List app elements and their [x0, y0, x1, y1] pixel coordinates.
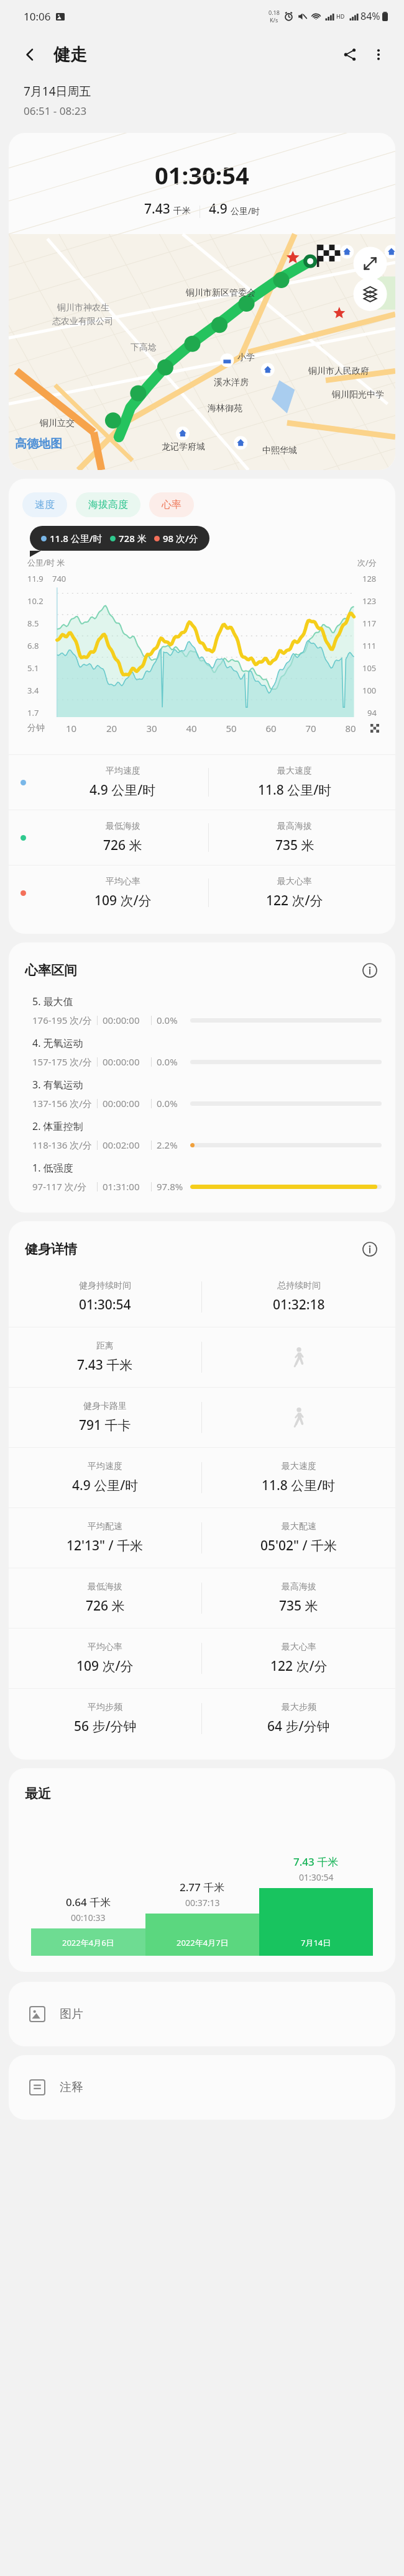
- staticText: 11.8 公里/时: [50, 532, 103, 545]
- staticText: 健身卡路里: [83, 1401, 127, 1412]
- staticText: 60: [251, 722, 291, 734]
- staticText: 平均心率: [88, 1642, 122, 1653]
- staticText: 海林御苑: [208, 403, 242, 414]
- staticText: 铜川立交: [40, 418, 75, 429]
- staticText: 健身持续时间: [79, 1280, 131, 1291]
- staticText: 平均步频: [88, 1702, 122, 1713]
- staticText: 平均心率: [106, 876, 140, 887]
- button[interactable]: Info about 心率区间: [359, 960, 380, 981]
- staticText: 6.8: [27, 640, 39, 651]
- staticText: 0.18: [269, 9, 280, 16]
- staticText: 铜川市神农生: [57, 302, 109, 314]
- staticText: 80: [331, 722, 370, 734]
- staticText: 高德地图: [15, 436, 62, 451]
- button[interactable]: 海拔高度: [76, 492, 140, 517]
- staticText: 2. 体重控制: [32, 1119, 83, 1133]
- staticText: 3. 有氧运动: [32, 1078, 83, 1091]
- staticText: 64 步/分钟: [267, 1717, 330, 1735]
- staticText: 00:10:33: [71, 1912, 106, 1923]
- staticText: 117: [362, 618, 377, 629]
- staticText: 0.64 千米: [66, 1895, 111, 1909]
- button[interactable]: 图片: [9, 1982, 395, 2046]
- staticText: 726 米: [86, 1597, 125, 1615]
- staticText: 最大心率: [282, 1642, 316, 1653]
- staticText: 01:30:54: [299, 1871, 334, 1883]
- staticText: 最高海拔: [277, 821, 312, 832]
- staticText: 111: [362, 640, 377, 651]
- button[interactable]: 7.43 千米: [259, 1813, 373, 1956]
- staticText: 00:00:00: [103, 1097, 151, 1109]
- staticText: 10:06: [24, 9, 51, 24]
- staticText: 铜川市人民政府: [308, 366, 369, 377]
- staticText: 70: [291, 722, 331, 734]
- staticText: 01:30:54: [155, 159, 249, 191]
- staticText: 5. 最大值: [32, 995, 73, 1008]
- staticText: 1.7: [27, 707, 39, 717]
- staticText: 122 次/分: [270, 1657, 328, 1675]
- staticText: 3.4: [27, 685, 39, 696]
- staticText: 2022年4月6日: [62, 1937, 114, 1948]
- button[interactable]: Share: [336, 40, 364, 69]
- staticText: 距离: [96, 1340, 114, 1352]
- staticText: 56 步/分钟: [74, 1717, 137, 1735]
- staticText: 726 米: [103, 836, 142, 854]
- button[interactable]: More options: [364, 40, 393, 69]
- staticText: 728 米: [119, 532, 147, 545]
- staticText: 735 米: [275, 836, 314, 854]
- staticText: 平均速度: [106, 766, 140, 777]
- staticText: 健走: [53, 44, 87, 65]
- staticText: 最大步频: [282, 1702, 316, 1713]
- staticText: 84%: [360, 9, 380, 23]
- button[interactable]: 速度: [22, 492, 67, 517]
- staticText: 健身详情: [25, 1241, 77, 1257]
- staticText: 龙记学府城: [162, 441, 205, 453]
- staticText: 速度: [35, 499, 55, 511]
- staticText: 11.9: [27, 573, 44, 584]
- staticText: 20: [91, 722, 132, 734]
- button[interactable]: 0.64 千米: [31, 1813, 145, 1956]
- staticText: 740: [52, 573, 67, 584]
- staticText: 1. 低强度: [32, 1161, 73, 1175]
- button[interactable]: Info about 健身详情: [359, 1239, 380, 1260]
- button[interactable]: Back: [16, 41, 44, 68]
- staticText: 最低海拔: [88, 1581, 122, 1593]
- button[interactable]: 1. 低强度: [9, 1155, 395, 1196]
- staticText: 06:51 - 08:23: [24, 104, 87, 118]
- button[interactable]: 2.77 千米: [145, 1813, 259, 1956]
- staticText: 122 次/分: [266, 892, 323, 910]
- staticText: 157-175 次/分: [32, 1055, 97, 1068]
- button[interactable]: 心率: [149, 492, 194, 517]
- staticText: 态农业有限公司: [52, 316, 113, 327]
- staticText: 最大速度: [282, 1461, 316, 1472]
- button[interactable]: 5. 最大值: [9, 988, 395, 1030]
- staticText: HD: [336, 12, 345, 20]
- button[interactable]: 2. 体重控制: [9, 1113, 395, 1155]
- staticText: 109 次/分: [94, 892, 152, 910]
- staticText: 50: [211, 722, 251, 734]
- button[interactable]: 4. 无氧运动: [9, 1030, 395, 1072]
- staticText: 注释: [60, 2080, 83, 2095]
- staticText: 10.2: [27, 595, 44, 607]
- staticText: 11.8 公里/时: [262, 1476, 336, 1494]
- staticText: 735 米: [279, 1597, 318, 1615]
- staticText: 01:30:54: [79, 1296, 131, 1314]
- staticText: 97-117 次/分: [32, 1180, 97, 1193]
- staticText: 最大心率: [277, 876, 312, 887]
- staticText: 公里/时 米: [27, 557, 65, 568]
- staticText: 海拔高度: [88, 499, 128, 511]
- button[interactable]: 注释: [9, 2055, 395, 2120]
- staticText: 105: [362, 662, 377, 674]
- staticText: 791 千卡: [79, 1416, 131, 1434]
- staticText: 铜川市新区管委会: [186, 287, 255, 299]
- staticText: 00:00:00: [103, 1055, 151, 1068]
- button[interactable]: Route map: [9, 234, 395, 470]
- staticText: 中熙华城: [262, 445, 297, 456]
- staticText: 铜川阳光中学: [332, 389, 384, 400]
- staticText: 100: [362, 685, 377, 696]
- button[interactable]: 3. 有氧运动: [9, 1072, 395, 1113]
- staticText: 4.9 公里/时: [72, 1476, 139, 1494]
- staticText: 0.0%: [157, 1097, 186, 1109]
- staticText: 12'13" / 千米: [67, 1537, 144, 1555]
- staticText: 01:31:00: [103, 1180, 151, 1193]
- staticText: 分钟: [27, 723, 45, 734]
